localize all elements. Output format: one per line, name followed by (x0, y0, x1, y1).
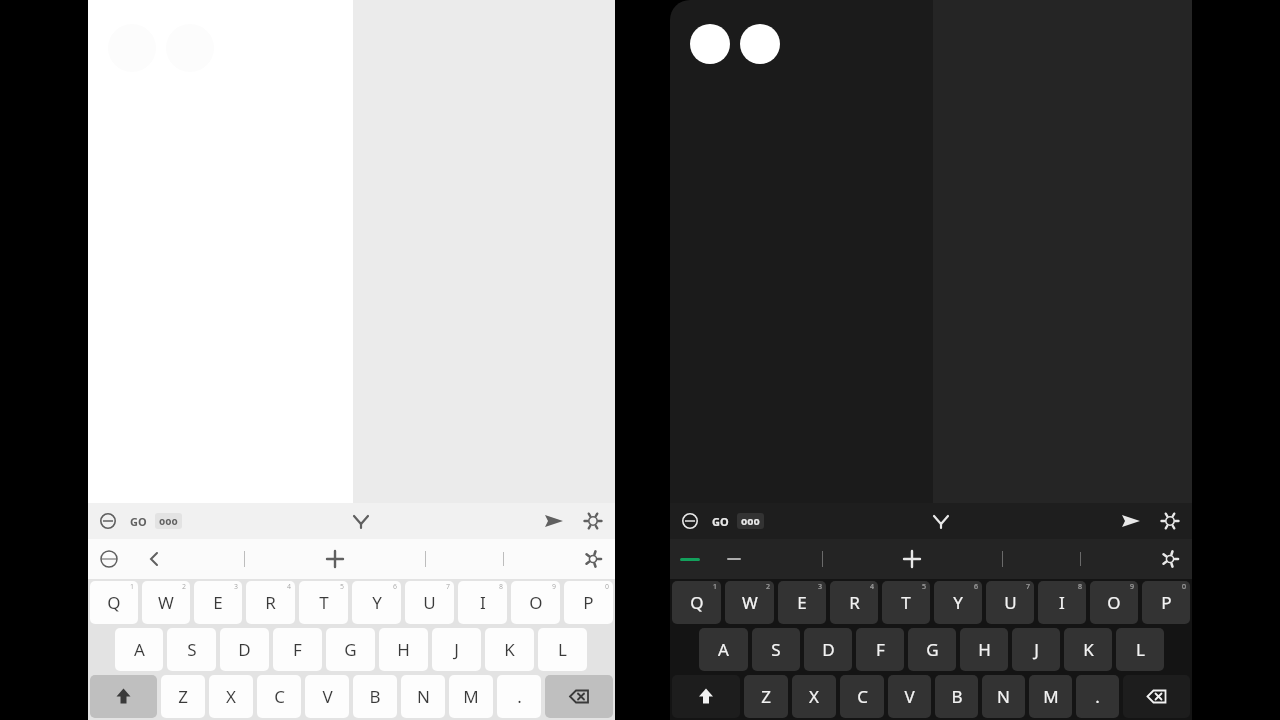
staticText: M (463, 685, 479, 708)
button[interactable]: L (538, 628, 587, 671)
button[interactable]: J (1012, 628, 1060, 671)
button[interactable]: C (257, 675, 301, 718)
button[interactable]: A (115, 628, 163, 671)
button[interactable]: Previous (722, 547, 746, 571)
button[interactable]: D (804, 628, 852, 671)
staticText: D (238, 638, 251, 661)
button[interactable]: G (326, 628, 375, 671)
button[interactable]: V (888, 675, 931, 718)
button[interactable]: Voice input (678, 509, 702, 533)
button[interactable]: . (1076, 675, 1119, 718)
button[interactable]: A (699, 628, 748, 671)
staticText: B (369, 685, 381, 708)
staticText: GO (712, 514, 729, 529)
button[interactable]: P (1142, 581, 1190, 624)
staticText: X (809, 685, 819, 708)
button[interactable]: Settings (581, 509, 605, 533)
button[interactable]: R (830, 581, 878, 624)
button[interactable]: Assistant (349, 509, 373, 533)
button[interactable]: H (960, 628, 1008, 671)
button[interactable]: Send (1118, 508, 1144, 534)
button[interactable]: B (353, 675, 397, 718)
button[interactable]: Shift (90, 675, 157, 718)
button[interactable]: Keyboard settings (1158, 547, 1182, 571)
button[interactable]: E (194, 581, 242, 624)
button[interactable]: U (986, 581, 1034, 624)
button[interactable]: W (142, 581, 190, 624)
button[interactable]: Settings (1158, 509, 1182, 533)
staticText: T (319, 591, 329, 614)
button[interactable]: X (792, 675, 836, 718)
button[interactable]: Q (672, 581, 721, 624)
button[interactable]: Shift (672, 675, 740, 718)
button[interactable]: Z (744, 675, 788, 718)
button[interactable]: Z (161, 675, 205, 718)
button[interactable]: R (246, 581, 295, 624)
staticText: F (293, 638, 302, 661)
staticText: 5 (922, 582, 927, 592)
button[interactable]: J (432, 628, 481, 671)
staticText: V (904, 685, 915, 708)
button[interactable]: Language (680, 558, 700, 561)
button[interactable]: S (752, 628, 800, 671)
button[interactable]: F (856, 628, 904, 671)
button[interactable]: K (485, 628, 534, 671)
button[interactable]: H (379, 628, 428, 671)
button[interactable]: K (1064, 628, 1112, 671)
button[interactable]: V (305, 675, 349, 718)
button[interactable]: M (1029, 675, 1072, 718)
button[interactable]: C (840, 675, 884, 718)
button[interactable]: Add (899, 546, 925, 572)
button[interactable]: Add (322, 546, 348, 572)
button[interactable]: Y (934, 581, 982, 624)
button[interactable]: M (449, 675, 493, 718)
button[interactable]: I (1038, 581, 1086, 624)
button[interactable]: Q (90, 581, 138, 624)
staticText: 8 (1078, 582, 1083, 592)
button[interactable]: D (220, 628, 269, 671)
button[interactable]: N (401, 675, 445, 718)
staticText: 3 (234, 582, 239, 592)
button[interactable]: N (982, 675, 1025, 718)
button[interactable]: Voice input (96, 509, 120, 533)
button[interactable]: B (935, 675, 978, 718)
button[interactable]: avatar (690, 24, 730, 64)
button[interactable]: F (273, 628, 322, 671)
staticText: Y (953, 591, 963, 614)
staticText: 6 (393, 582, 398, 592)
button[interactable]: O (1090, 581, 1138, 624)
button[interactable]: Backspace (545, 675, 613, 718)
staticText: D (822, 638, 835, 661)
staticText: 4 (287, 582, 292, 592)
staticText: U (1004, 591, 1017, 614)
staticText: K (504, 638, 515, 661)
button[interactable]: L (1116, 628, 1164, 671)
button[interactable]: I (458, 581, 507, 624)
button[interactable]: Assistant (929, 509, 953, 533)
button[interactable]: E (778, 581, 826, 624)
button[interactable]: T (882, 581, 930, 624)
button[interactable]: U (405, 581, 454, 624)
button[interactable]: . (497, 675, 541, 718)
button[interactable]: Keyboard settings (581, 547, 605, 571)
button[interactable]: Previous (142, 547, 166, 571)
button[interactable]: avatar (740, 24, 780, 64)
button[interactable]: W (725, 581, 774, 624)
button[interactable]: S (167, 628, 216, 671)
button[interactable]: ooo (159, 514, 178, 528)
button[interactable]: O (511, 581, 560, 624)
button[interactable]: P (564, 581, 613, 624)
button[interactable]: Language (98, 548, 120, 570)
button[interactable]: T (299, 581, 348, 624)
staticText: P (1161, 591, 1172, 614)
button[interactable]: Backspace (1123, 675, 1190, 718)
button[interactable]: X (209, 675, 253, 718)
button[interactable]: G (908, 628, 956, 671)
button[interactable]: Send (541, 508, 567, 534)
button[interactable]: ooo (741, 514, 760, 528)
staticText: E (213, 591, 223, 614)
staticText: E (797, 591, 807, 614)
button[interactable]: Y (352, 581, 401, 624)
